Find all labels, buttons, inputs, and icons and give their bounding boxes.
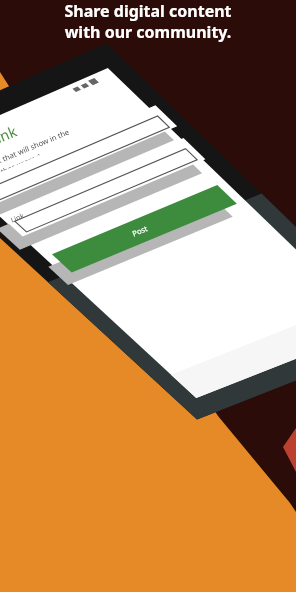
staticText: Share digital content with our community…	[64, 0, 232, 43]
